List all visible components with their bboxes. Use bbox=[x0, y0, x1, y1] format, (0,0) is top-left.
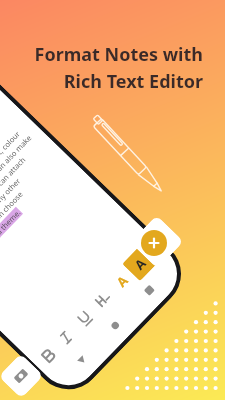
staticText: Format Notes with bbox=[34, 42, 203, 67]
button[interactable]: Underline bbox=[69, 303, 100, 334]
button[interactable]: Italic bbox=[50, 322, 81, 353]
staticText: Rich Text Editor bbox=[63, 69, 203, 94]
button[interactable]: Add note bbox=[141, 230, 167, 256]
staticText: You can change the text size, font, colo… bbox=[0, 128, 22, 239]
button[interactable]: Block quote bbox=[134, 275, 165, 306]
staticText: A bbox=[112, 272, 132, 291]
button[interactable]: Bold bbox=[32, 341, 63, 372]
button[interactable]: Heading bbox=[87, 284, 118, 315]
button[interactable]: Bulleted list bbox=[100, 310, 131, 341]
button[interactable]: Insert image bbox=[0, 353, 44, 399]
button[interactable]: Highlight colour bbox=[122, 246, 157, 281]
staticText: A bbox=[130, 254, 150, 273]
button[interactable]: Text colour bbox=[106, 266, 137, 297]
staticText: notes. And a user can choose bbox=[0, 189, 25, 270]
staticText: background theme. bbox=[0, 207, 23, 264]
staticText: images, audio files to any other bbox=[0, 176, 23, 262]
staticText: and style of your notes. You can also ma… bbox=[0, 132, 34, 247]
staticText: a checklist with them. You can attach bbox=[0, 154, 28, 255]
button[interactable]: Align bbox=[66, 344, 97, 375]
